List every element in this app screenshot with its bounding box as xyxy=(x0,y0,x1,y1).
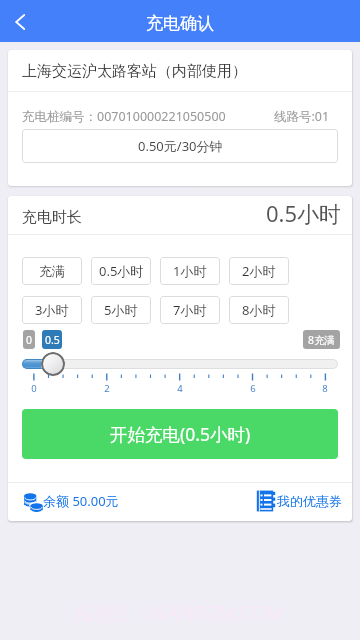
button[interactable]: 5小时 xyxy=(91,296,151,324)
staticText: 充电桩编号：007010000221050500 xyxy=(22,108,226,125)
staticText: 7小时 xyxy=(173,301,207,319)
button[interactable]: Charging duration slider xyxy=(22,359,338,369)
staticText: 上海交运沪太路客站（内部使用） xyxy=(22,62,247,81)
staticText: 我的优惠券 xyxy=(277,493,342,509)
button[interactable]: 0.5小时 xyxy=(91,257,151,285)
staticText: 8充满 xyxy=(308,333,336,347)
button[interactable]: 2小时 xyxy=(229,257,289,285)
button[interactable]: 1小时 xyxy=(160,257,220,285)
staticText: 0.5小时 xyxy=(266,198,342,228)
staticText: 2 xyxy=(97,382,117,395)
staticText: 8 xyxy=(315,382,335,395)
staticText: 6 xyxy=(243,382,263,395)
staticText: 8小时 xyxy=(242,301,276,319)
staticText: 线路号:01 xyxy=(274,108,330,125)
staticText: 1小时 xyxy=(173,262,207,280)
staticText: 4 xyxy=(170,382,190,395)
staticText: 充电确认 xyxy=(146,13,214,34)
staticText: 2小时 xyxy=(242,262,276,280)
button[interactable]: 充满 xyxy=(22,257,82,285)
staticText: 0.50元/30分钟 xyxy=(138,137,223,155)
button[interactable]: 余额 50.00元 xyxy=(22,485,119,517)
staticText: 3小时 xyxy=(35,301,69,319)
staticText: 充电时长 xyxy=(22,208,82,227)
staticText: 0.5 xyxy=(45,333,60,347)
staticText: 开始充电(0.5小时) xyxy=(110,422,251,446)
button[interactable]: 开始充电(0.5小时) xyxy=(22,409,338,459)
staticText: 5小时 xyxy=(104,301,138,319)
button[interactable]: 我的优惠券 xyxy=(256,485,342,517)
button[interactable]: 3小时 xyxy=(22,296,82,324)
staticText: 0 xyxy=(24,382,44,395)
staticText: 充满 xyxy=(39,263,65,279)
staticText: 0.5小时 xyxy=(99,262,144,280)
staticText: 0 xyxy=(26,333,33,347)
staticText: 余额 50.00元 xyxy=(43,492,119,510)
button[interactable]: 8小时 xyxy=(229,296,289,324)
button[interactable]: Back xyxy=(0,0,44,42)
button[interactable]: 7小时 xyxy=(160,296,220,324)
